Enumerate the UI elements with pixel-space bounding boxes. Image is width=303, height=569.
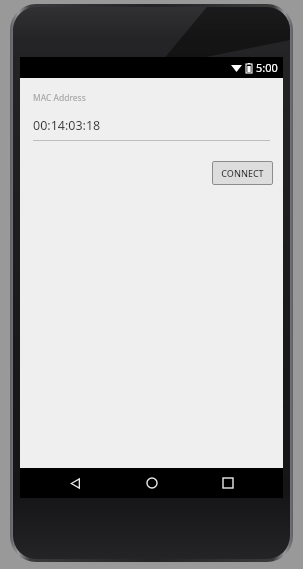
staticText: MAC Address (33, 92, 86, 104)
button[interactable]: Home (130, 468, 174, 498)
staticText: 00:14:03:18 (33, 117, 101, 134)
button[interactable]: CONNECT (212, 161, 273, 185)
button[interactable]: Recent apps (206, 468, 250, 498)
button[interactable]: 00:14:03:18 (20, 117, 283, 141)
staticText: 5:00 (256, 60, 278, 75)
staticText: CONNECT (221, 167, 264, 179)
button[interactable]: Back (53, 468, 97, 498)
